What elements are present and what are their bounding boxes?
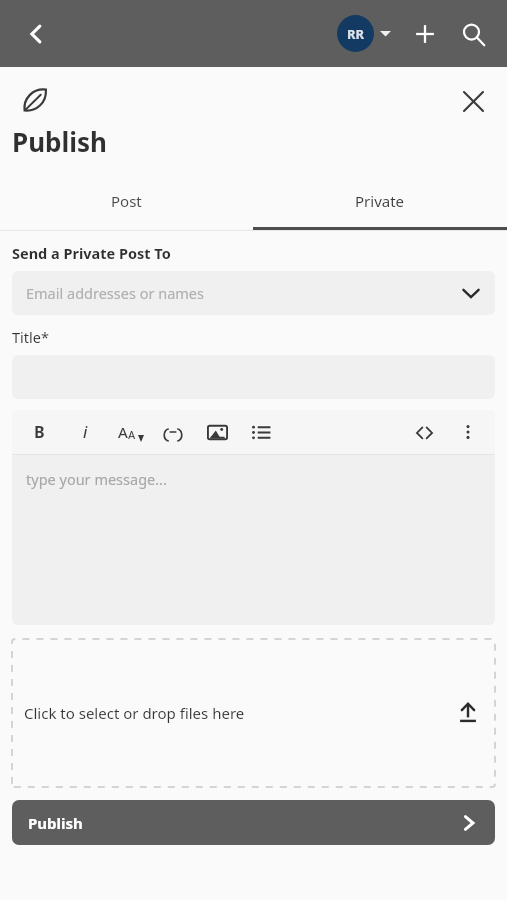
- staticText: type your message...: [26, 469, 167, 489]
- staticText: Email addresses or names: [26, 283, 461, 303]
- staticText: Publish: [28, 813, 459, 833]
- button[interactable]: type your message...: [12, 455, 495, 625]
- button[interactable]: More options: [455, 419, 481, 445]
- button[interactable]: Close: [453, 81, 493, 121]
- button[interactable]: Bullet list: [248, 419, 274, 445]
- staticText: RR: [347, 25, 365, 43]
- button[interactable]: Back: [14, 12, 58, 56]
- staticText: B: [34, 421, 45, 443]
- staticText: A: [128, 427, 136, 442]
- staticText: Post: [111, 191, 142, 211]
- button[interactable]: Click to select or drop files here: [12, 639, 495, 787]
- staticText: Publish: [12, 124, 107, 159]
- button[interactable]: Italic: [72, 419, 98, 445]
- button[interactable]: Private: [253, 172, 507, 230]
- button[interactable]: Publish: [12, 800, 495, 845]
- button[interactable]: Source code: [411, 419, 437, 445]
- button[interactable]: Email addresses or names: [12, 271, 495, 315]
- button[interactable]: Account menu: [335, 11, 393, 56]
- staticText: Title*: [12, 327, 49, 347]
- button[interactable]: Insert image: [204, 419, 230, 445]
- staticText: i: [83, 421, 88, 443]
- button[interactable]: Bold: [26, 419, 52, 445]
- staticText: Send a Private Post To: [12, 243, 171, 263]
- staticText: Click to select or drop files here: [24, 703, 245, 723]
- button[interactable]: Add: [403, 12, 447, 56]
- button[interactable]: Font size: [118, 419, 144, 445]
- button[interactable]: Post: [0, 172, 253, 230]
- staticText: Private: [355, 191, 405, 211]
- staticText: A: [118, 422, 128, 442]
- button[interactable]: Search: [451, 12, 495, 56]
- button[interactable]: Insert link: [160, 419, 186, 445]
